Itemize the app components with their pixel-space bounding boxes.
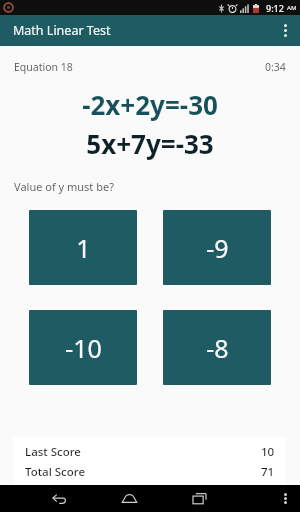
staticText: Equation 18 bbox=[14, 60, 73, 74]
staticText: -8 bbox=[206, 331, 229, 365]
button[interactable]: Recent apps bbox=[182, 485, 216, 512]
button[interactable]: Menu bbox=[274, 485, 296, 512]
staticText: 5x+7y=-33 bbox=[0, 126, 300, 161]
button[interactable]: Last Score bbox=[14, 437, 286, 485]
button[interactable]: -9 bbox=[163, 210, 271, 285]
staticText: Math Linear Test bbox=[13, 22, 111, 39]
button[interactable]: Back bbox=[42, 485, 76, 512]
button[interactable]: More options bbox=[270, 15, 300, 46]
button[interactable]: 1 bbox=[29, 210, 137, 285]
staticText: 10 bbox=[261, 444, 275, 460]
staticText: AM bbox=[287, 4, 297, 12]
staticText: -10 bbox=[65, 331, 102, 365]
staticText: 9:12 bbox=[266, 2, 284, 14]
staticText: Value of y must be? bbox=[14, 179, 114, 194]
staticText: Last Score bbox=[25, 444, 81, 460]
staticText: 71 bbox=[261, 464, 275, 478]
staticText: 0:34 bbox=[265, 60, 286, 74]
button[interactable]: Home bbox=[112, 485, 146, 512]
button[interactable]: -8 bbox=[163, 310, 271, 385]
staticText: -2x+2y=-30 bbox=[0, 87, 300, 122]
staticText: 1 bbox=[76, 231, 91, 265]
staticText: -9 bbox=[206, 231, 229, 265]
staticText: Total Score bbox=[25, 464, 85, 478]
button[interactable]: -10 bbox=[29, 310, 137, 385]
